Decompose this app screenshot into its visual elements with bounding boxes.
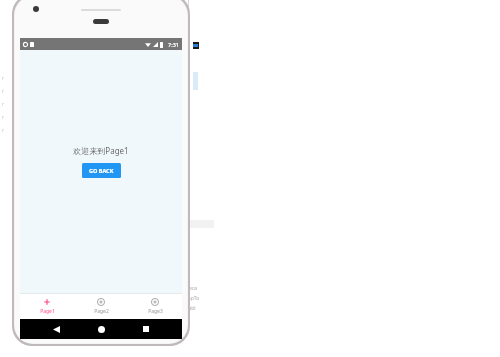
button[interactable]: Page2 xyxy=(74,295,128,318)
button[interactable]: Home xyxy=(92,320,110,338)
button[interactable]: GO BACK xyxy=(82,163,121,178)
staticText: Page2 xyxy=(94,308,109,315)
staticText: r xyxy=(2,75,5,82)
staticText: Tabl xyxy=(186,305,196,312)
staticText: 欢迎来到Page1 xyxy=(73,145,129,156)
staticText: r xyxy=(2,101,5,108)
staticText: Page1 xyxy=(40,308,55,315)
button[interactable]: Page1 xyxy=(20,295,74,318)
staticText: r xyxy=(2,114,5,121)
button[interactable]: Page3 xyxy=(128,295,182,318)
button[interactable]: Recent apps xyxy=(137,320,155,338)
staticText: r xyxy=(2,127,5,134)
staticText: GO BACK xyxy=(89,167,114,174)
staticText: r xyxy=(2,88,5,95)
staticText: mpTo xyxy=(186,295,200,302)
staticText: 7:31 xyxy=(168,41,179,48)
staticText: neca xyxy=(186,285,198,292)
button[interactable]: Back xyxy=(47,320,65,338)
staticText: Page3 xyxy=(148,308,163,315)
